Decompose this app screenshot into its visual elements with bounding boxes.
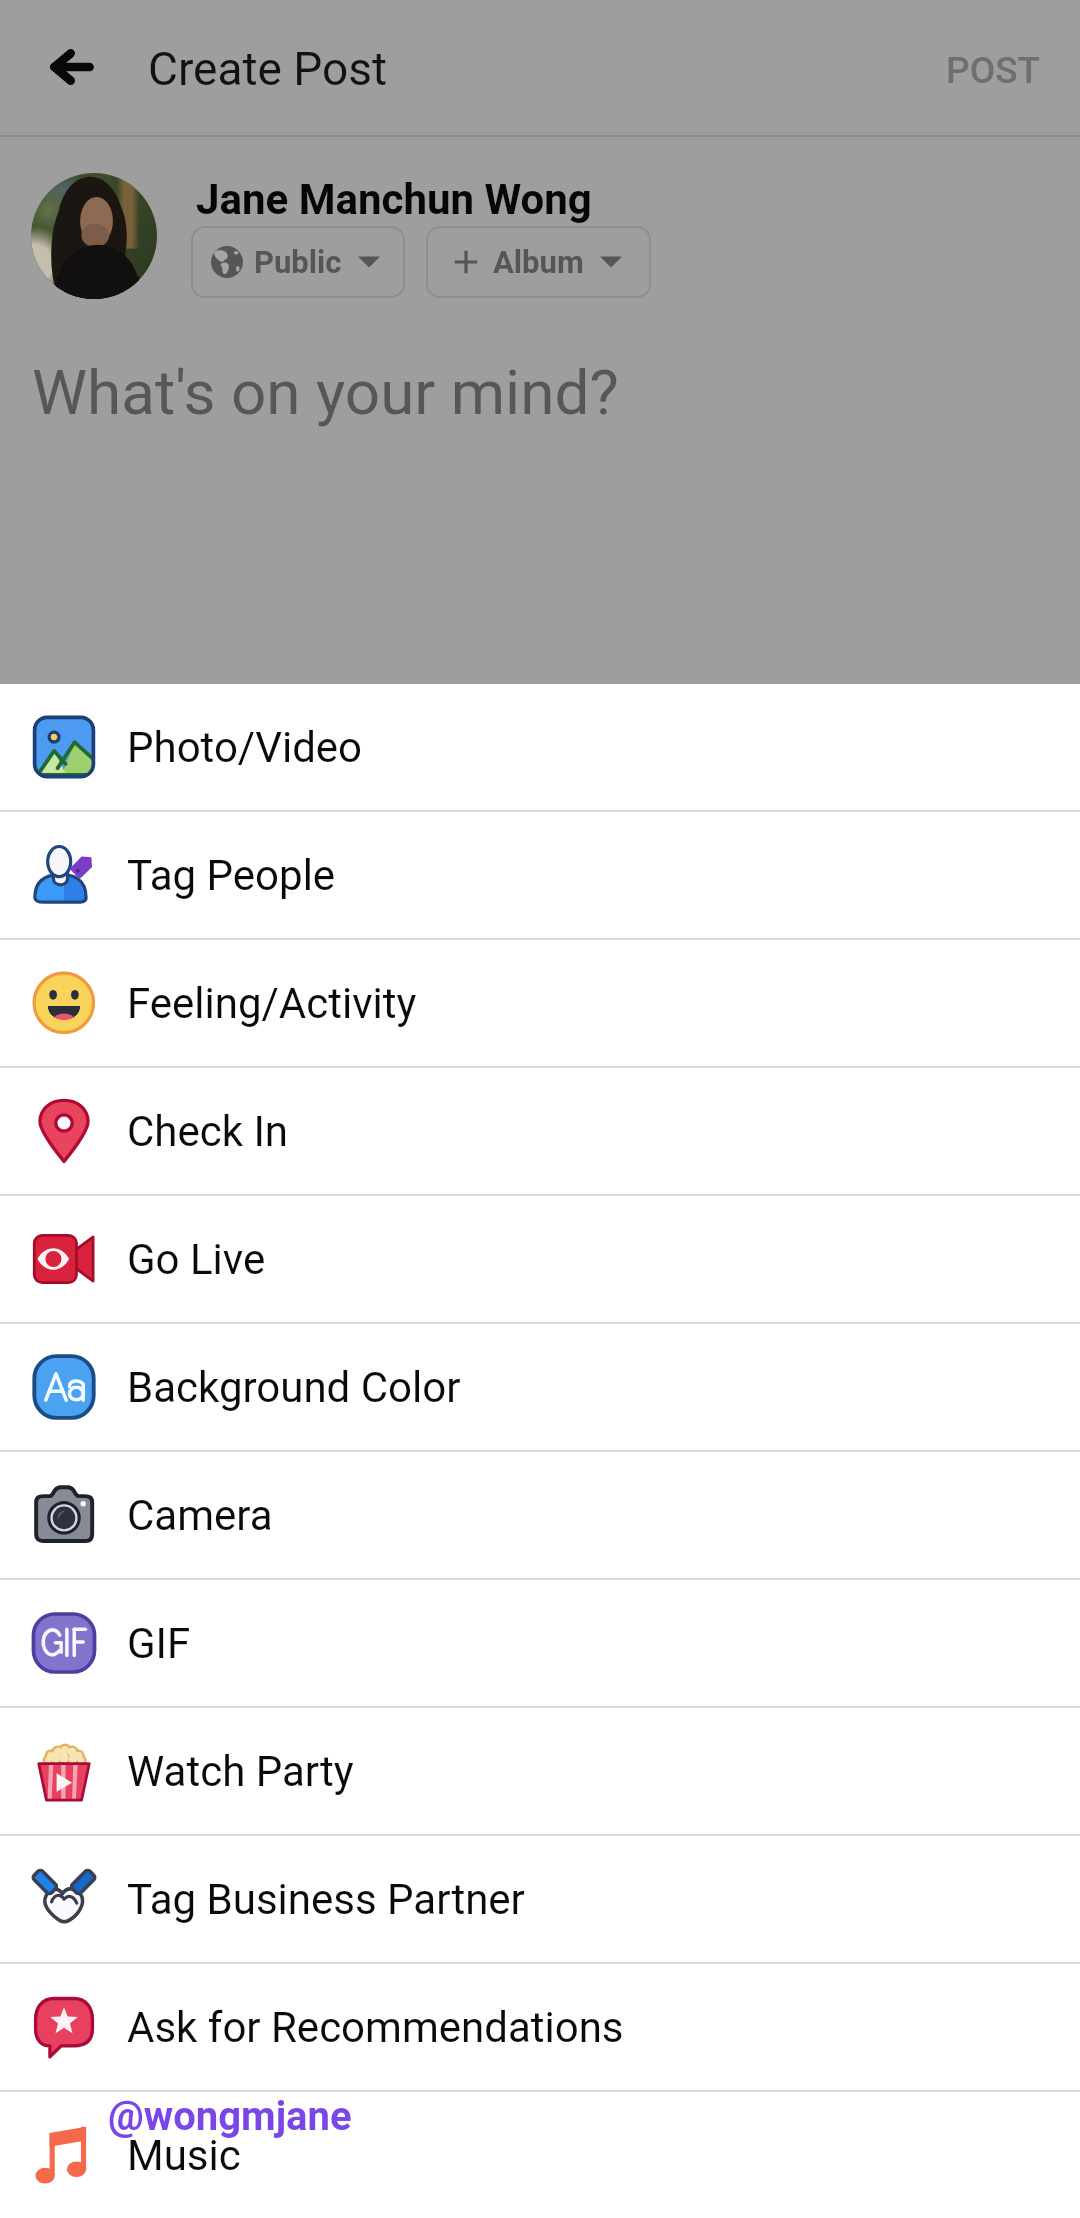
staticText: What's on your mind? — [32, 356, 619, 429]
button[interactable]: Tag Business Partner — [0, 1836, 1080, 1962]
button[interactable]: Check In — [0, 1068, 1080, 1194]
button[interactable]: Background Color — [0, 1324, 1080, 1450]
staticText: Photo/Video — [127, 723, 363, 772]
staticText: Music — [127, 2131, 241, 2180]
staticText: Go Live — [127, 1235, 266, 1284]
button[interactable]: Back — [16, 11, 128, 123]
button[interactable]: Feeling/Activity — [0, 940, 1080, 1066]
staticText: @wongmjane — [108, 2093, 352, 2140]
staticText: POST — [946, 49, 1041, 92]
staticText: Tag People — [127, 851, 336, 900]
button[interactable]: Public — [191, 226, 405, 298]
button[interactable]: POST — [913, 17, 1080, 116]
button[interactable]: Photo/Video — [0, 684, 1080, 810]
staticText: Feeling/Activity — [127, 979, 417, 1028]
button[interactable]: Album — [426, 226, 651, 298]
staticText: Background Color — [127, 1363, 461, 1412]
staticText: Public — [254, 244, 342, 280]
button[interactable]: Ask for Recommendations — [0, 1964, 1080, 2090]
button[interactable]: Profile photo — [31, 173, 157, 299]
button[interactable]: GIF — [0, 1580, 1080, 1706]
button[interactable]: Camera — [0, 1452, 1080, 1578]
staticText: Create Post — [148, 42, 388, 96]
button[interactable]: Tag People — [0, 812, 1080, 938]
staticText: Jane Manchun Wong — [196, 175, 592, 224]
button[interactable]: Music — [0, 2092, 1080, 2218]
staticText: Tag Business Partner — [127, 1875, 525, 1924]
staticText: Album — [493, 244, 584, 280]
button[interactable]: Watch Party — [0, 1708, 1080, 1834]
staticText: Check In — [127, 1107, 289, 1156]
staticText: Watch Party — [127, 1747, 354, 1796]
staticText: GIF — [127, 1619, 191, 1668]
staticText: Camera — [127, 1491, 273, 1540]
button[interactable]: Go Live — [0, 1196, 1080, 1322]
staticText: Ask for Recommendations — [127, 2003, 624, 2052]
button[interactable]: What's on your mind? — [0, 340, 1080, 684]
